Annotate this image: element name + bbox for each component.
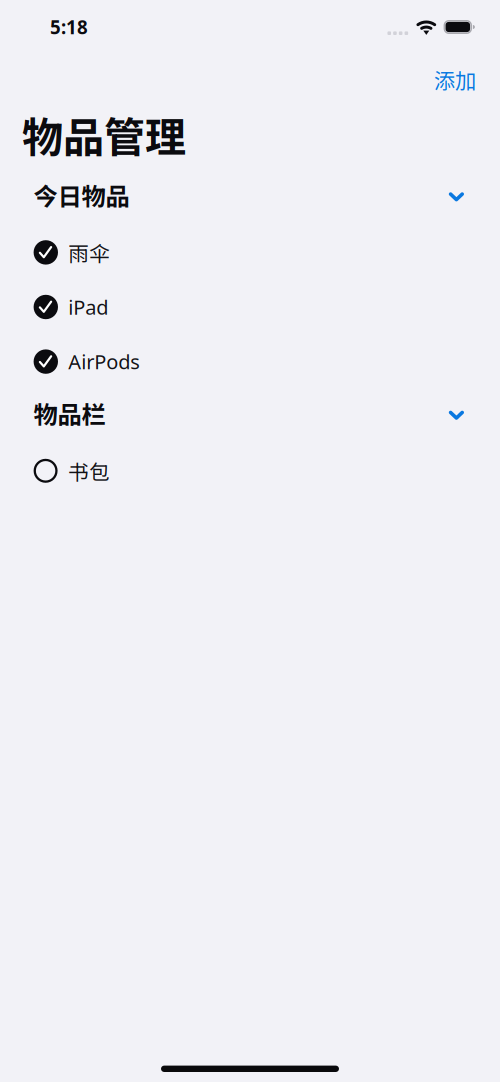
staticText: 雨伞 (68, 237, 110, 267)
staticText: AirPods (68, 348, 140, 375)
button[interactable]: 今日物品 (0, 170, 500, 225)
button[interactable]: 添加 (428, 57, 482, 101)
staticText: 物品管理 (22, 104, 186, 164)
button[interactable]: AirPods (0, 334, 500, 389)
staticText: 物品栏 (33, 396, 105, 431)
staticText: 书包 (68, 456, 110, 486)
staticText: iPad (68, 294, 108, 320)
staticText: 5:18 (50, 15, 88, 39)
staticText: 添加 (434, 64, 476, 94)
staticText: 今日物品 (33, 177, 129, 212)
button[interactable]: iPad (0, 280, 500, 334)
button[interactable]: 物品栏 (0, 389, 500, 443)
button[interactable]: 书包 (0, 443, 500, 498)
button[interactable]: 雨伞 (0, 225, 500, 280)
